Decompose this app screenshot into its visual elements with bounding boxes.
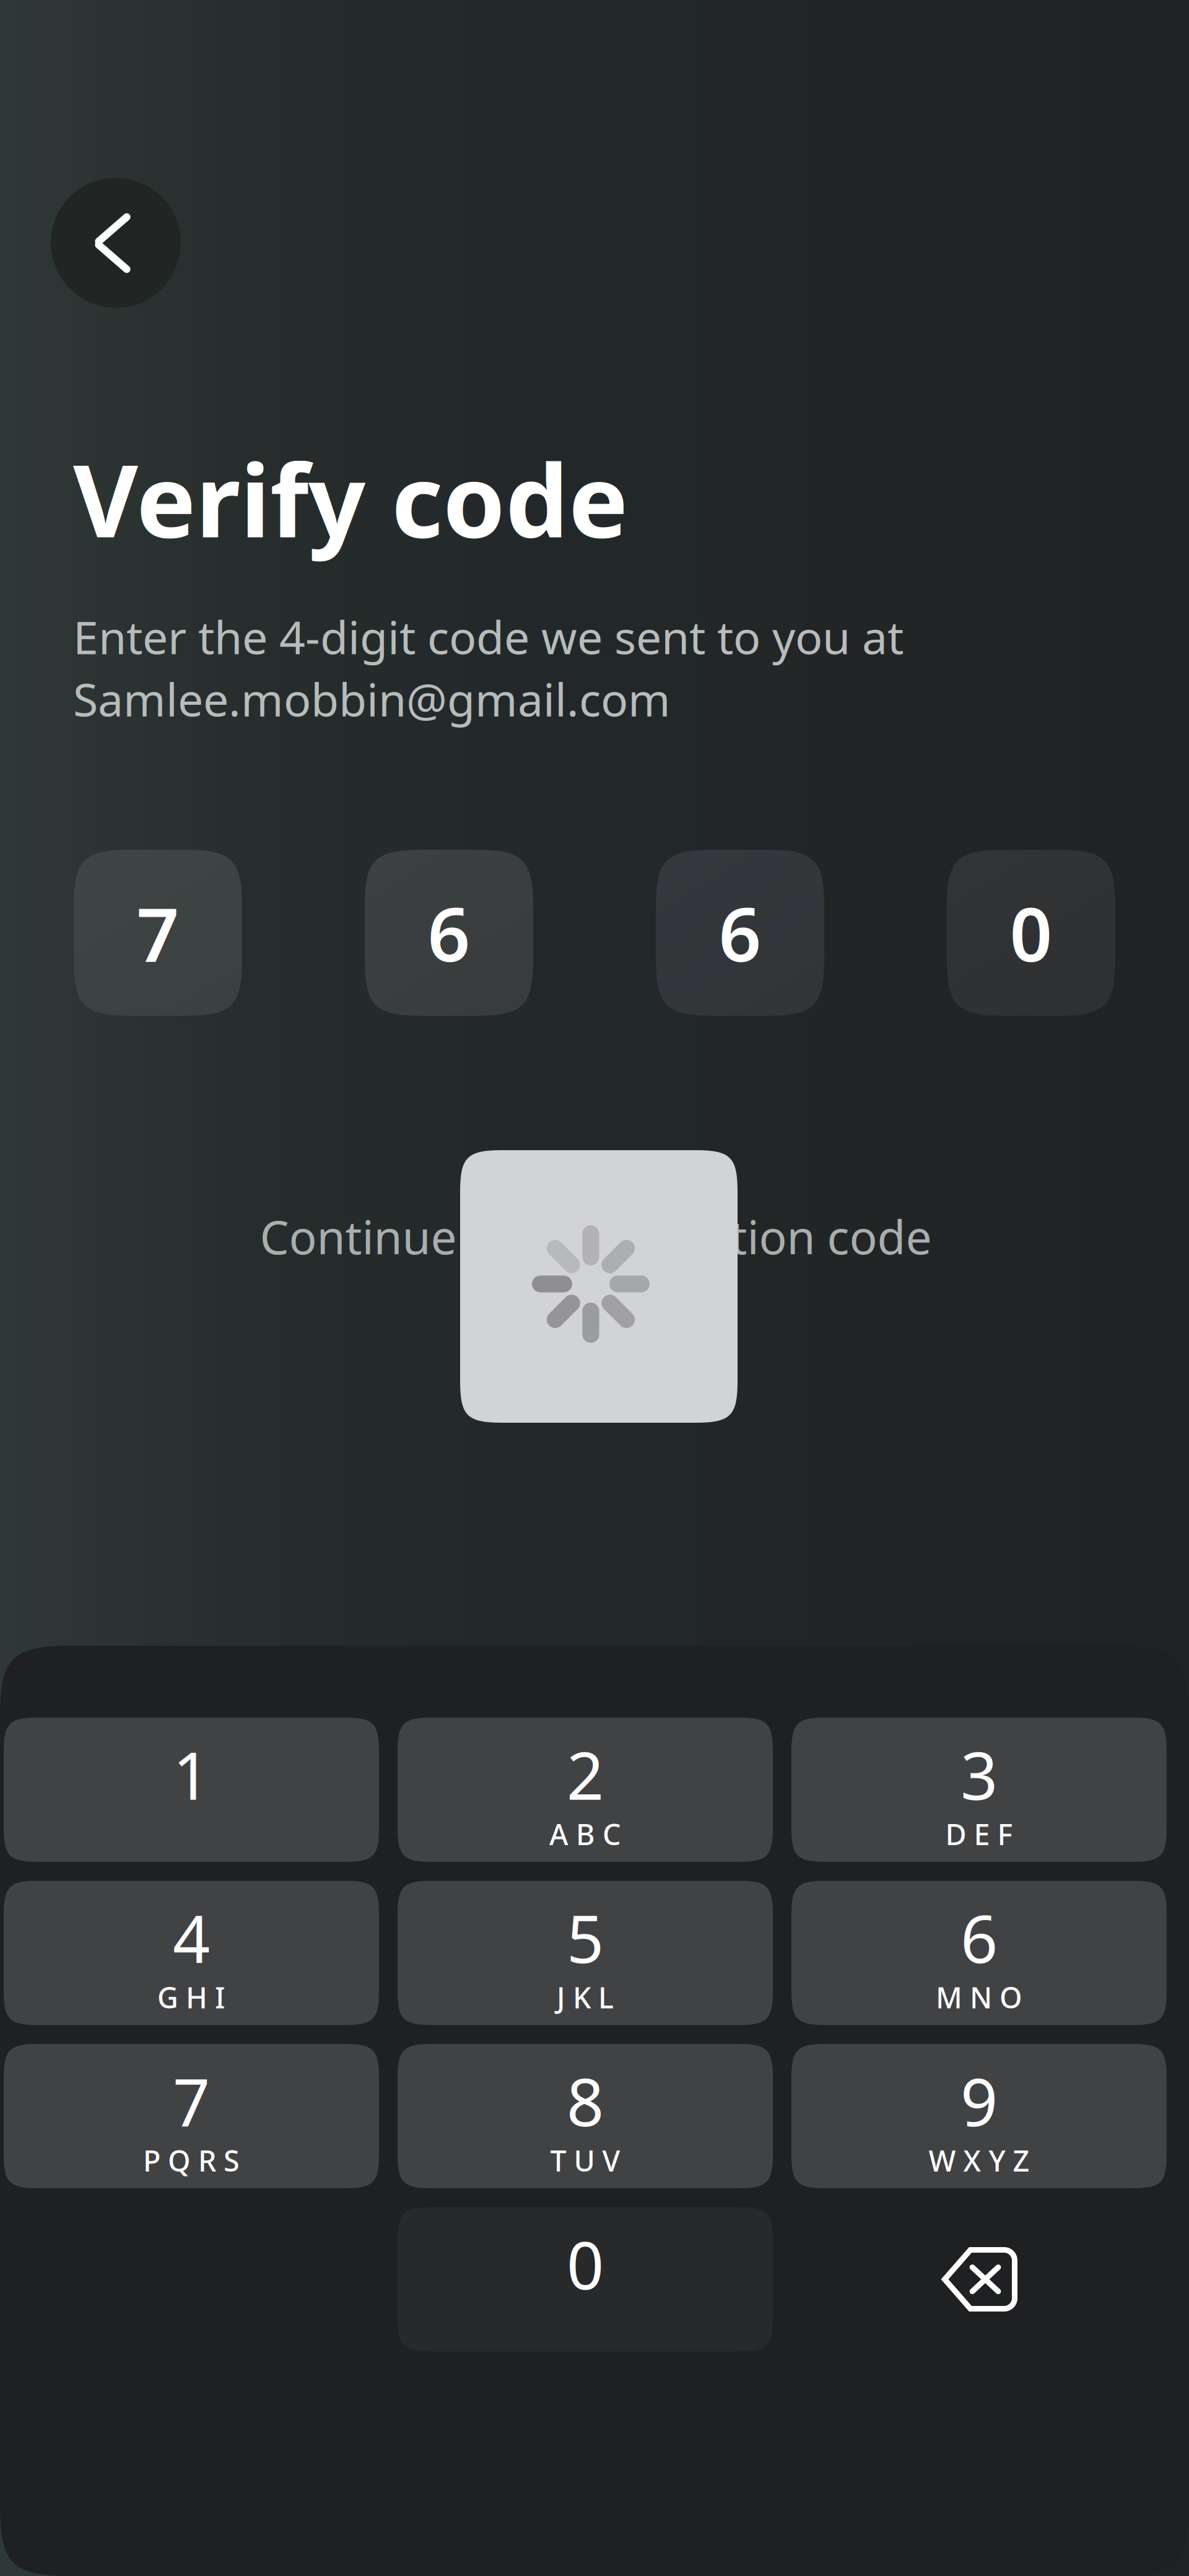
button[interactable]: 7	[4, 2044, 379, 2188]
staticText: 9	[960, 2058, 998, 2144]
button[interactable]: 9	[791, 2044, 1167, 2188]
button[interactable]: 4	[4, 1881, 379, 2025]
staticText: D E F	[945, 1815, 1013, 1853]
staticText: Verify code	[73, 432, 628, 565]
staticText: 1	[173, 1731, 210, 1818]
staticText: 8	[567, 2058, 604, 2144]
button[interactable]: Delete	[791, 2207, 1167, 2351]
button[interactable]: 8	[398, 2044, 773, 2188]
staticText: 0	[567, 2221, 604, 2307]
button[interactable]: Back	[51, 178, 181, 308]
staticText: J K L	[557, 1978, 614, 2016]
staticText: P Q R S	[143, 2141, 240, 2180]
staticText: W X Y Z	[929, 2141, 1030, 2180]
button[interactable]: 6	[791, 1881, 1167, 2025]
staticText: 6	[960, 1894, 998, 1981]
staticText: 6	[719, 883, 761, 982]
staticText: 2	[567, 1731, 604, 1818]
button[interactable]: 0	[398, 2207, 773, 2351]
staticText: G H I	[157, 1978, 225, 2016]
staticText: 3	[960, 1731, 998, 1818]
staticText: Samlee.mobbin@gmail.com	[73, 669, 671, 729]
button[interactable]: 2	[398, 1718, 773, 1862]
staticText: 4	[173, 1894, 210, 1981]
staticText: 5	[567, 1894, 604, 1981]
button[interactable]: 1	[4, 1718, 379, 1862]
staticText: T U V	[550, 2141, 620, 2180]
staticText: 7	[137, 883, 179, 982]
staticText: 6	[428, 883, 470, 982]
button[interactable]: 5	[398, 1881, 773, 2025]
button[interactable]: 3	[791, 1718, 1167, 1862]
staticText: A B C	[549, 1815, 621, 1853]
staticText: M N O	[936, 1978, 1022, 2016]
staticText: 7	[173, 2058, 210, 2144]
staticText: Continue with verification code	[260, 1206, 932, 1267]
staticText: 0	[1010, 883, 1052, 982]
staticText: Enter the 4-digit code we sent to you at	[73, 606, 904, 667]
